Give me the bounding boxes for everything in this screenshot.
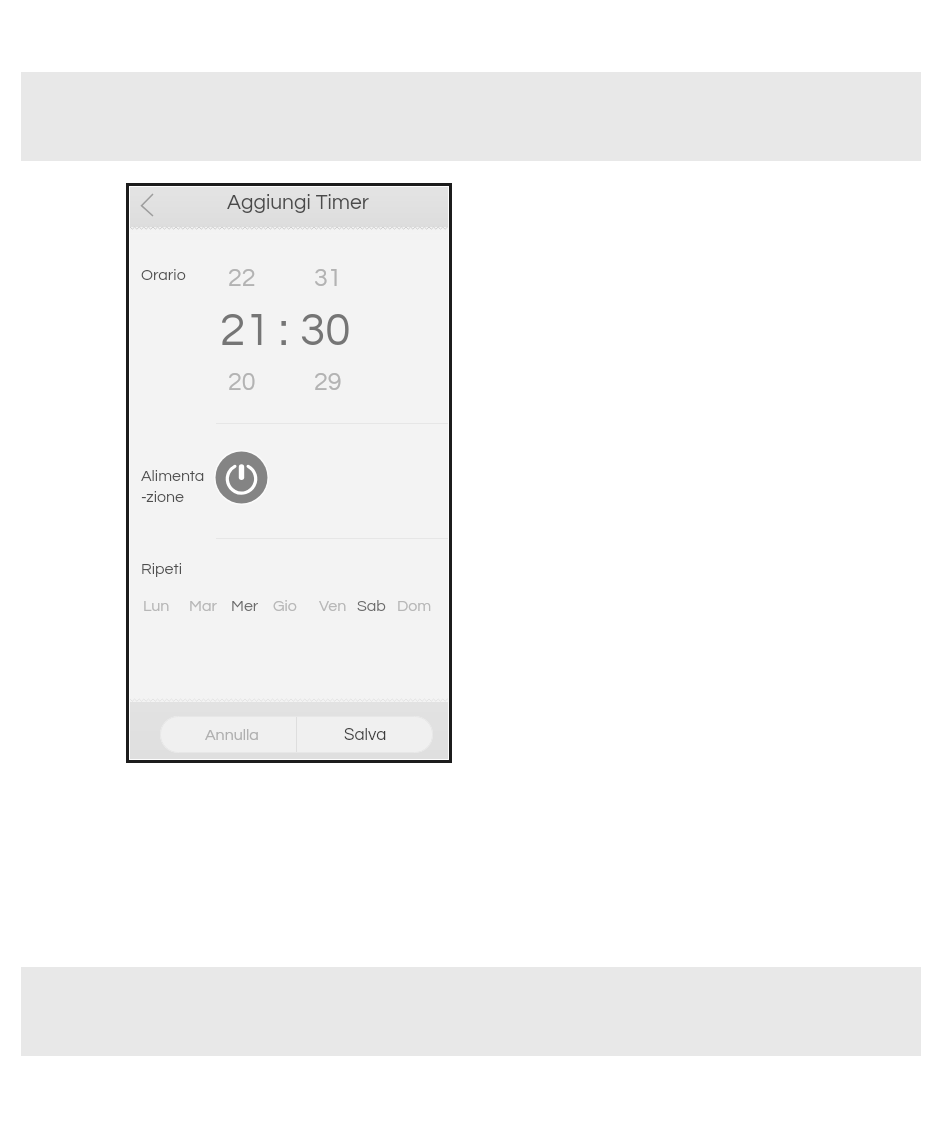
staticText: -zione [141,489,184,505]
staticText: Orario [141,267,186,283]
staticText: Sab [357,598,386,614]
staticText: Alimenta [141,468,205,484]
staticText: Gio [273,598,297,614]
button[interactable]: Back [130,187,170,227]
button[interactable]: Lun [142,597,171,615]
staticText: Lun [143,598,170,614]
staticText: 22 [228,265,256,291]
staticText: Ven [319,598,347,614]
staticText: 29 [314,369,342,395]
button[interactable]: Salva [297,716,433,753]
button[interactable]: Power toggle [214,450,269,505]
staticText: Mar [189,598,217,614]
staticText: Ripeti [141,561,182,577]
staticText: Dom [397,598,432,614]
staticText: Aggiungi Timer [227,192,370,214]
button[interactable]: Annulla [160,716,296,753]
button[interactable]: Mer [230,597,260,615]
button[interactable]: Ven [318,597,348,615]
button[interactable]: Gio [272,597,298,615]
staticText: 30 [300,307,351,354]
staticText: Mer [231,598,259,614]
staticText: Salva [344,726,387,744]
staticText: 20 [228,369,256,395]
staticText: 21 [220,307,271,354]
button[interactable]: Dom [396,597,433,615]
staticText: 31 [314,265,342,291]
button[interactable]: Mar [188,597,218,615]
button[interactable]: Sab [356,597,387,615]
staticText: : [279,307,289,354]
staticText: Annulla [205,727,259,743]
